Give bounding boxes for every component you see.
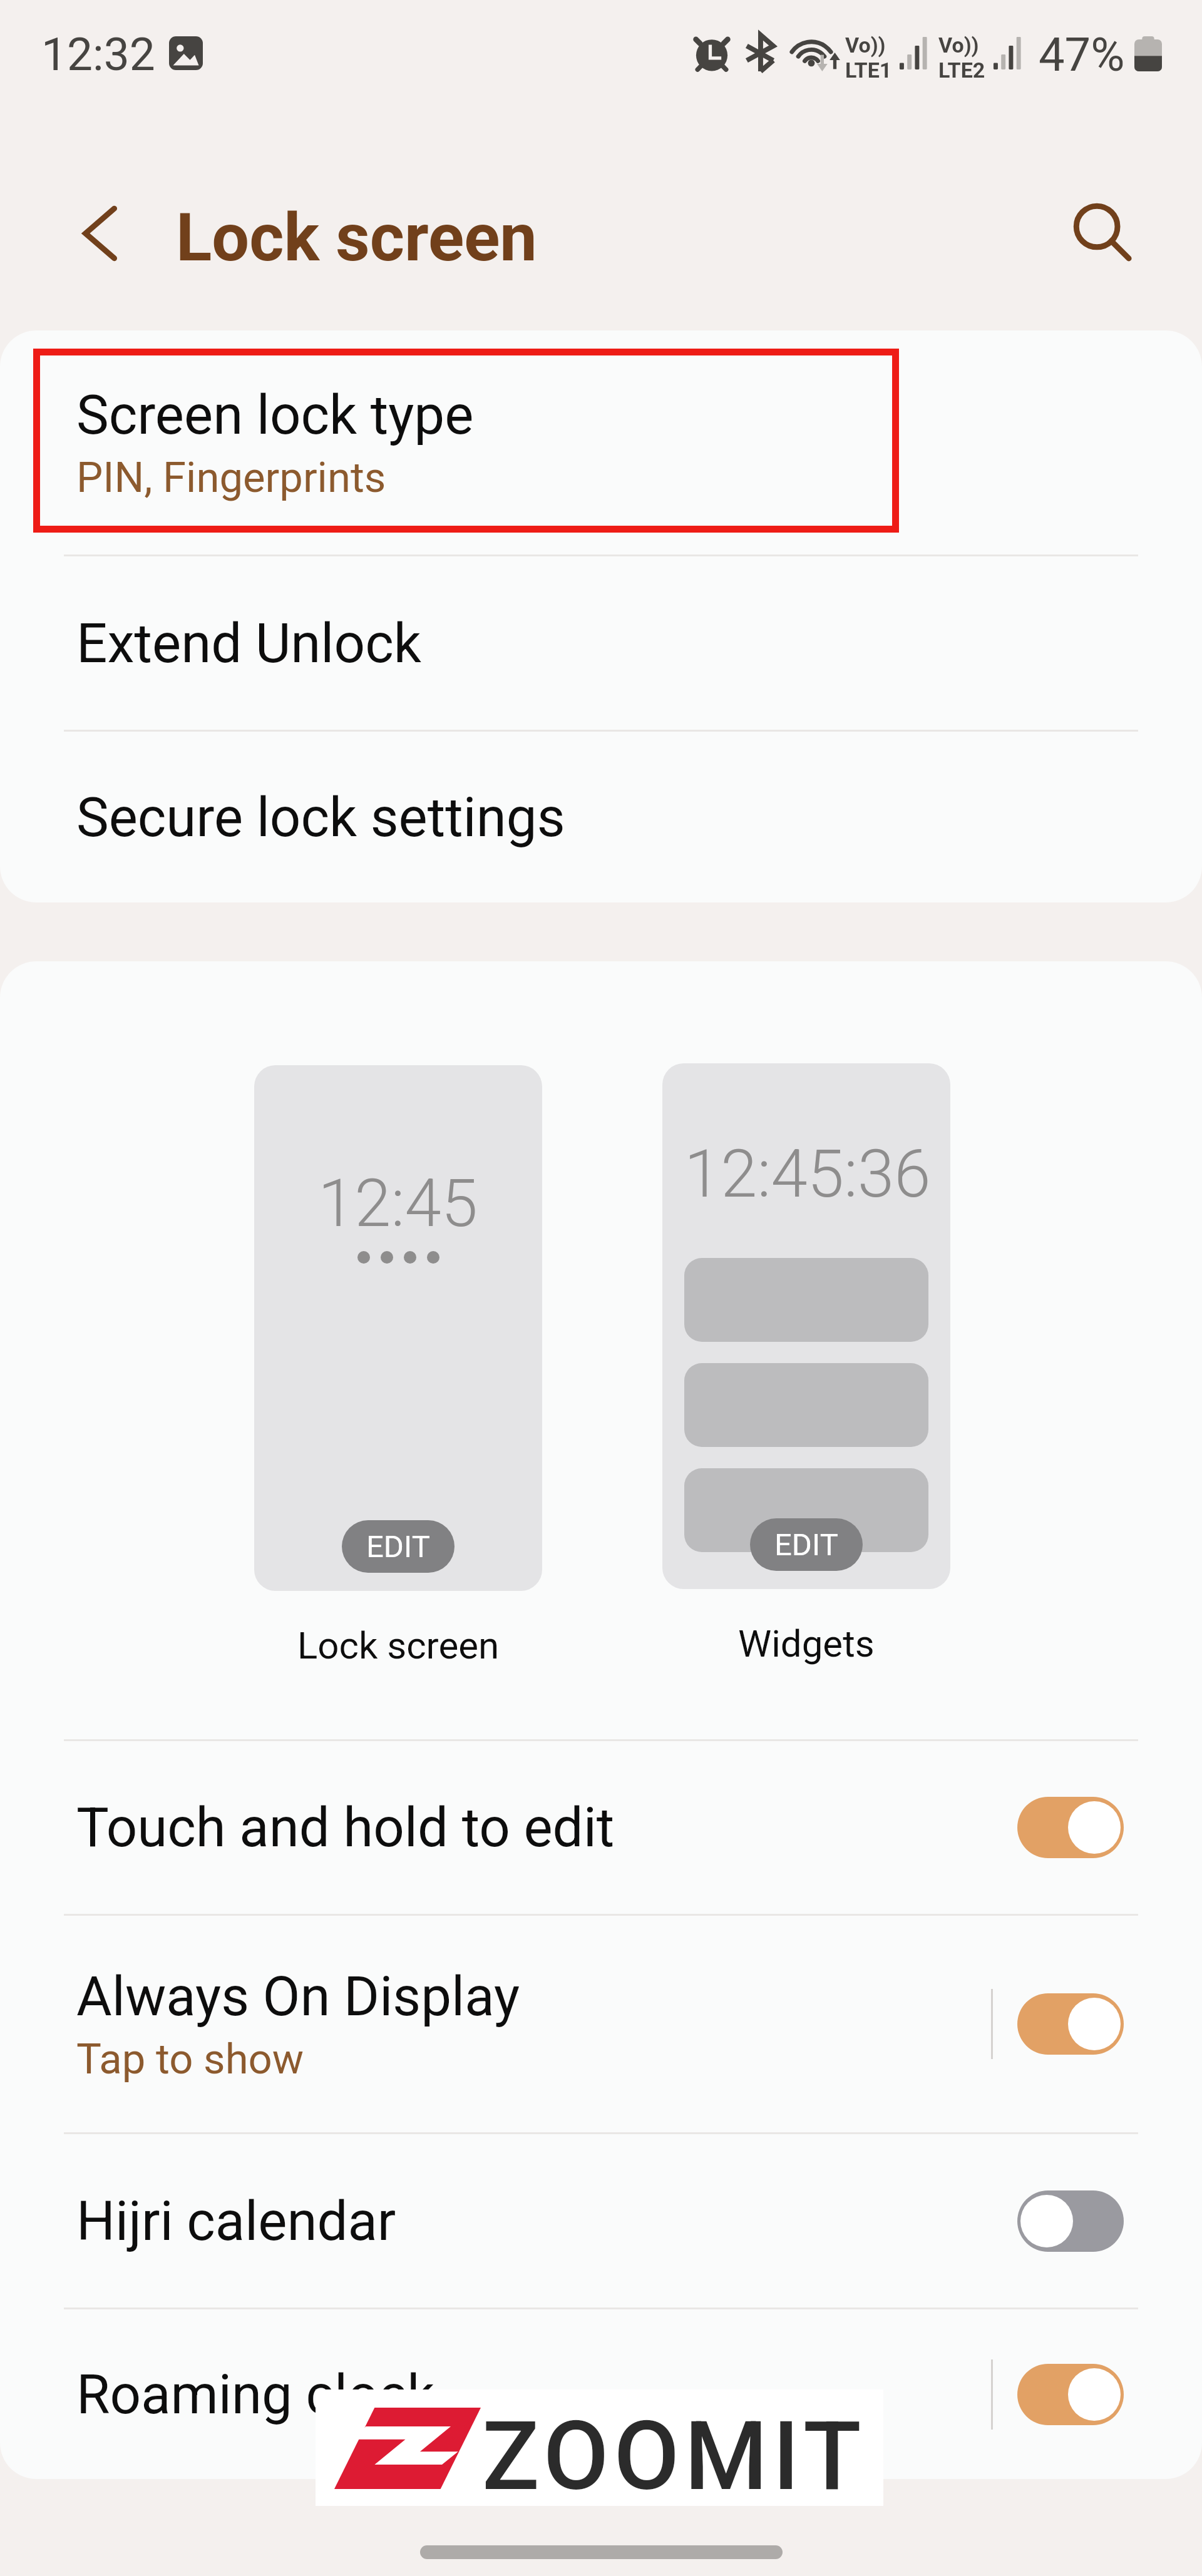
button[interactable]: EDIT: [342, 1520, 455, 1573]
staticText: Extend Unlock: [76, 611, 421, 675]
button[interactable]: Touch and hold to edit: [0, 1741, 1202, 1914]
button[interactable]: Always On Display toggle: [1017, 1993, 1124, 2055]
staticText: 47%: [1039, 28, 1125, 82]
button[interactable]: Widgets preview: [662, 1063, 950, 1589]
button[interactable]: Secure lock settings: [0, 732, 1202, 902]
button[interactable]: Back: [70, 196, 140, 266]
staticText: 12:45: [318, 1165, 478, 1242]
staticText: 12:32: [41, 28, 155, 81]
staticText: LTE1: [845, 58, 892, 83]
button[interactable]: Hijri calendar toggle: [1017, 2190, 1124, 2252]
staticText: PIN, Fingerprints: [76, 453, 386, 503]
staticText: Screen lock type: [76, 383, 474, 447]
staticText: Always On Display: [76, 1965, 520, 2028]
button[interactable]: Roaming clock: [0, 2309, 1202, 2479]
staticText: EDIT: [366, 1529, 430, 1565]
staticText: Lock screen: [176, 199, 537, 277]
staticText: Widgets: [738, 1622, 875, 1665]
staticText: Tap to show: [76, 2035, 304, 2084]
button[interactable]: EDIT: [750, 1518, 863, 1571]
button[interactable]: Roaming clock toggle: [1017, 2364, 1124, 2425]
staticText: Hijri calendar: [76, 2189, 396, 2253]
button[interactable]: Touch and hold to edit toggle: [1017, 1797, 1124, 1858]
staticText: LTE2: [938, 58, 985, 83]
button[interactable]: Always On Display: [0, 1916, 1202, 2132]
staticText: 12:45:36: [684, 1136, 931, 1213]
staticText: Roaming clock: [76, 2363, 435, 2426]
button[interactable]: Lock screen preview: [254, 1065, 542, 1591]
staticText: ZOOMIT: [482, 2401, 866, 2512]
staticText: EDIT: [774, 1527, 838, 1563]
staticText: Lock screen: [297, 1623, 500, 1667]
button[interactable]: Hijri calendar: [0, 2134, 1202, 2308]
button[interactable]: Screen lock type: [0, 330, 1202, 555]
button[interactable]: Extend Unlock: [0, 556, 1202, 730]
staticText: Vo)): [938, 33, 979, 58]
button[interactable]: Search: [1059, 188, 1137, 265]
staticText: Secure lock settings: [76, 785, 565, 849]
staticText: Touch and hold to edit: [76, 1796, 615, 1859]
staticText: Vo)): [845, 33, 886, 58]
